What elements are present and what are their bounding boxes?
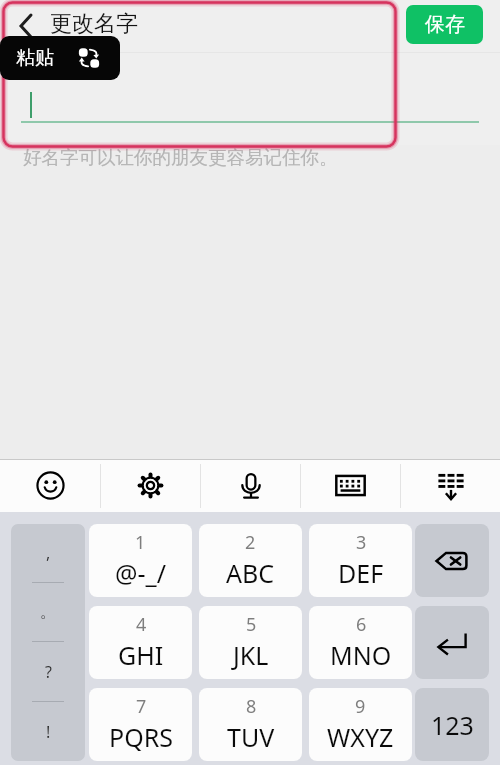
staticText: ,	[46, 542, 51, 564]
staticText: 123	[431, 708, 474, 742]
button[interactable]: Backspace	[415, 524, 489, 597]
button[interactable]: 9	[309, 688, 412, 761]
button[interactable]: Enter	[415, 606, 489, 679]
staticText: @-_/	[115, 556, 166, 590]
staticText: 粘贴	[16, 46, 54, 70]
button[interactable]: 2	[199, 524, 302, 597]
staticText: DEF	[338, 556, 384, 590]
button[interactable]: 粘贴	[0, 36, 120, 80]
button[interactable]: 保存	[406, 5, 483, 44]
staticText: WXYZ	[327, 720, 394, 754]
button[interactable]: 3	[309, 524, 412, 597]
staticText: 好名字可以让你的朋友更容易记住你。	[23, 146, 338, 169]
button[interactable]: 1	[89, 524, 192, 597]
staticText: JKL	[233, 638, 269, 672]
staticText: 4	[136, 612, 147, 637]
button[interactable]: Settings	[101, 459, 200, 512]
button[interactable]: Hide keyboard	[401, 459, 500, 512]
staticText: 8	[246, 694, 257, 719]
staticText: 7	[136, 694, 147, 719]
button[interactable]: 4	[89, 606, 192, 679]
button[interactable]: 8	[199, 688, 302, 761]
staticText: 2	[245, 530, 256, 555]
staticText: PQRS	[109, 720, 173, 754]
staticText: !	[46, 721, 51, 743]
button[interactable]: Emoji	[0, 459, 100, 512]
staticText: 更改名字	[50, 10, 138, 38]
staticText: 5	[246, 612, 257, 637]
button[interactable]: ,	[11, 524, 85, 761]
button[interactable]: 7	[89, 688, 192, 761]
staticText: 3	[356, 530, 367, 555]
staticText: GHI	[118, 638, 164, 672]
staticText: 。	[40, 602, 56, 622]
staticText: MNO	[330, 638, 392, 672]
staticText: 9	[355, 694, 366, 719]
button[interactable]: 5	[199, 606, 302, 679]
staticText: 6	[356, 612, 367, 637]
button[interactable]: Voice input	[201, 459, 300, 512]
button[interactable]: 6	[309, 606, 412, 679]
button[interactable]: Keyboard	[301, 459, 400, 512]
staticText: ?	[45, 661, 52, 683]
button[interactable]: Back	[8, 8, 44, 44]
staticText: ABC	[226, 556, 275, 590]
staticText: 1	[135, 530, 146, 555]
button[interactable]: 123	[415, 688, 489, 761]
staticText: 保存	[425, 12, 465, 37]
staticText: TUV	[227, 720, 275, 754]
